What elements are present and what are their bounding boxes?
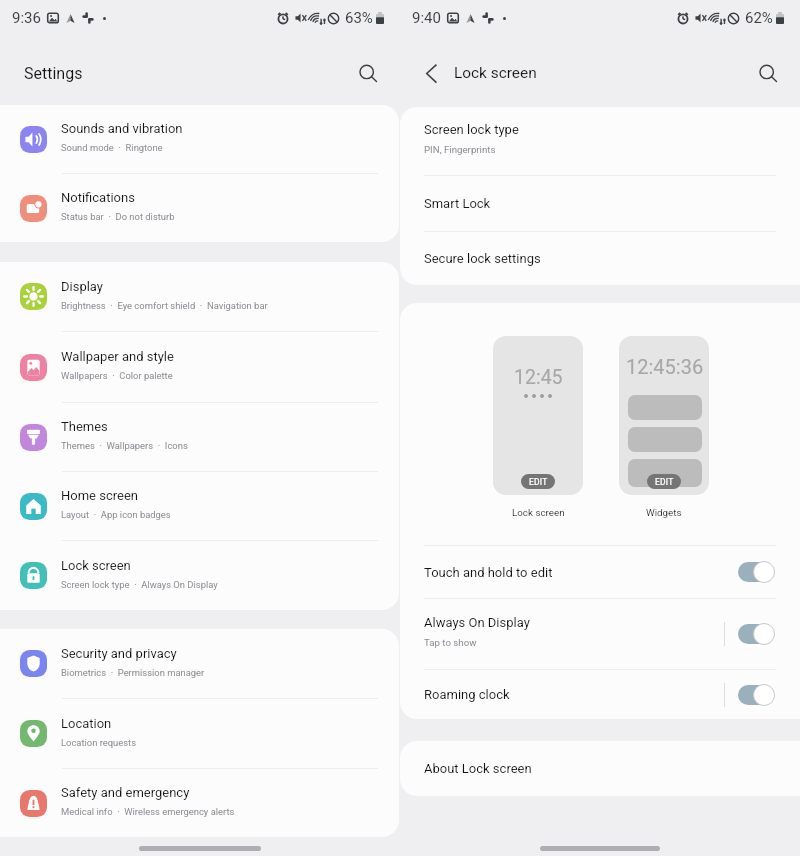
staticText: Security and privacy bbox=[61, 646, 177, 661]
staticText: Secure lock settings bbox=[424, 251, 541, 266]
staticText: Tap to show bbox=[424, 637, 477, 648]
button[interactable]: About Lock screen bbox=[400, 741, 800, 796]
staticText: Medical info · Wireless emergency alerts bbox=[61, 806, 235, 817]
staticText: 12:45:36 bbox=[626, 355, 704, 378]
staticText: 12:45 bbox=[514, 366, 563, 389]
button[interactable]: Roaming clock bbox=[400, 670, 800, 719]
staticText: Sound mode · Ringtone bbox=[61, 142, 163, 153]
staticText: Location requests bbox=[61, 737, 136, 748]
staticText: Sounds and vibration bbox=[61, 121, 183, 136]
staticText: PIN, Fingerprints bbox=[424, 144, 496, 155]
button[interactable]: Search bbox=[751, 56, 785, 90]
staticText: Lock screen bbox=[454, 64, 537, 82]
button[interactable]: Search bbox=[351, 56, 385, 90]
staticText: Notifications bbox=[61, 190, 135, 205]
button[interactable]: Safety and emergency bbox=[0, 769, 399, 837]
staticText: Lock screen bbox=[512, 507, 565, 518]
button[interactable]: Home screen bbox=[0, 472, 399, 540]
button[interactable]: Location bbox=[0, 699, 399, 768]
button[interactable]: Always On Display bbox=[400, 599, 800, 669]
button[interactable]: Secure lock settings bbox=[400, 232, 800, 285]
staticText: Themes bbox=[61, 419, 108, 434]
staticText: Home screen bbox=[61, 488, 138, 503]
staticText: EDIT bbox=[529, 477, 548, 487]
staticText: About Lock screen bbox=[424, 761, 532, 776]
staticText: EDIT bbox=[655, 477, 674, 487]
staticText: 9:36 bbox=[12, 9, 41, 27]
staticText: Smart Lock bbox=[424, 196, 491, 211]
staticText: Lock screen bbox=[61, 558, 131, 573]
button[interactable]: Themes bbox=[0, 403, 399, 471]
staticText: Wallpaper and style bbox=[61, 349, 174, 364]
staticText: Widgets bbox=[646, 507, 682, 518]
button[interactable]: Toggle bbox=[738, 684, 774, 706]
staticText: Biometrics · Permission manager bbox=[61, 667, 205, 678]
staticText: Layout · App icon badges bbox=[61, 509, 171, 520]
staticText: Location bbox=[61, 716, 112, 731]
button[interactable]: Security and privacy bbox=[0, 629, 399, 698]
staticText: Display bbox=[61, 279, 103, 294]
button[interactable]: Screen lock type bbox=[400, 107, 800, 175]
button[interactable]: EDIT bbox=[647, 474, 681, 489]
staticText: Safety and emergency bbox=[61, 785, 190, 800]
staticText: Wallpapers · Color palette bbox=[61, 370, 173, 381]
staticText: Settings bbox=[24, 64, 83, 83]
staticText: Touch and hold to edit bbox=[424, 565, 553, 580]
button[interactable]: Touch and hold to edit bbox=[400, 546, 800, 598]
button[interactable]: Toggle bbox=[738, 561, 774, 583]
staticText: Status bar · Do not disturb bbox=[61, 211, 175, 222]
staticText: 62% bbox=[745, 9, 773, 27]
staticText: 9:40 bbox=[412, 9, 441, 27]
staticText: Screen lock type bbox=[424, 122, 519, 137]
button[interactable]: 12:45 bbox=[493, 336, 583, 495]
staticText: 63% bbox=[345, 9, 373, 27]
button[interactable]: Notifications bbox=[0, 174, 399, 242]
button[interactable]: Smart Lock bbox=[400, 176, 800, 231]
staticText: Always On Display bbox=[424, 615, 530, 630]
button[interactable]: Display bbox=[0, 262, 399, 331]
staticText: Brightness · Eye comfort shield · Naviga… bbox=[61, 300, 268, 311]
button[interactable]: Sounds and vibration bbox=[0, 105, 399, 173]
staticText: Screen lock type · Always On Display bbox=[61, 579, 218, 590]
button[interactable]: 12:45:36 bbox=[619, 336, 709, 495]
button[interactable]: EDIT bbox=[521, 474, 555, 489]
button[interactable]: Lock screen bbox=[0, 541, 399, 610]
button[interactable]: Back bbox=[414, 56, 448, 90]
staticText: Themes · Wallpapers · Icons bbox=[61, 440, 188, 451]
staticText: Roaming clock bbox=[424, 687, 510, 702]
button[interactable]: Wallpaper and style bbox=[0, 332, 399, 402]
button[interactable]: Toggle bbox=[738, 623, 774, 645]
